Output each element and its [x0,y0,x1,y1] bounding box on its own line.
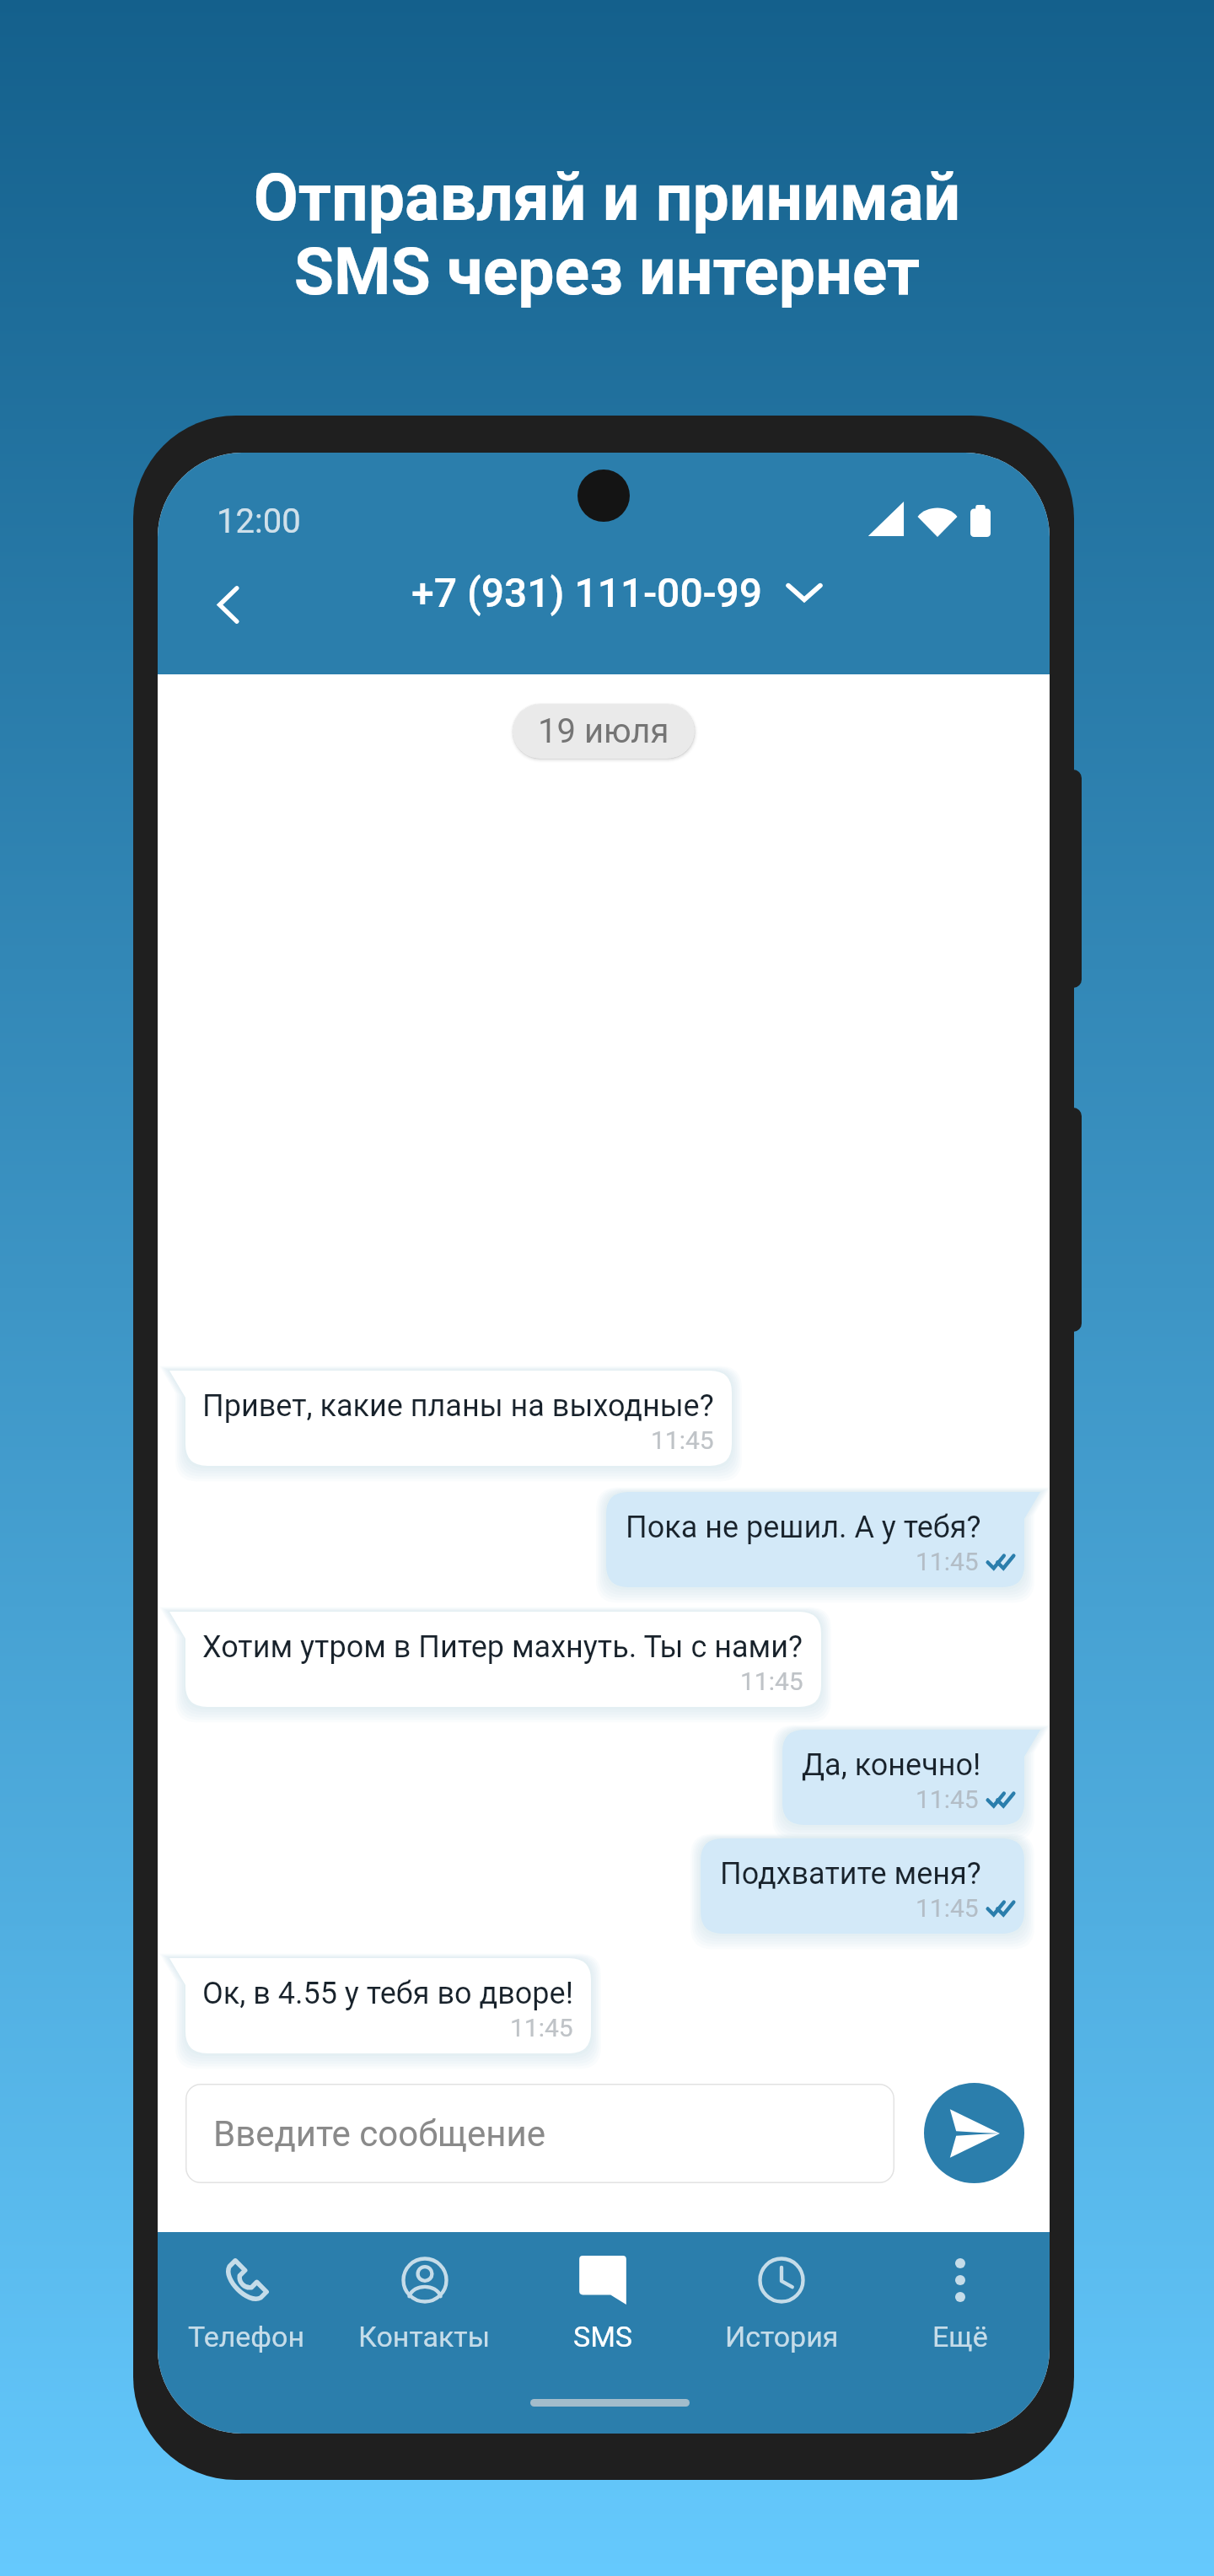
staticText: 11:45 [916,1547,979,1576]
staticText: 12:00 [217,502,301,541]
button[interactable]: Привет, какие планы на выходные? [185,1371,732,1466]
staticText: 11:45 [916,1784,979,1814]
staticText: 11:45 [740,1666,803,1696]
staticText: SMS [573,2320,633,2353]
button[interactable]: Send [924,2083,1024,2183]
button[interactable]: Show contact options [782,570,827,615]
button[interactable]: Контакты [336,2232,513,2377]
button[interactable]: Телефон [158,2232,336,2377]
button[interactable]: Пока не решил. А у тебя? [606,1492,1024,1587]
staticText: 11:45 [651,1425,714,1455]
staticText: Привет, какие планы на выходные? [202,1388,714,1424]
staticText: +7 (931) 111-00-99 [411,569,763,616]
button[interactable]: Хотим утром в Питер махнуть. Ты с нами? [185,1612,821,1707]
staticText: Контакты [358,2320,491,2353]
button[interactable]: SMS [513,2232,692,2377]
staticText: Введите сообщение [213,2113,546,2155]
staticText: История [725,2320,839,2353]
staticText: Да, конечно! [802,1747,981,1783]
staticText: Хотим утром в Питер махнуть. Ты с нами? [202,1629,803,1665]
staticText: Телефон [188,2320,305,2353]
button[interactable]: Ещё [871,2232,1050,2377]
button[interactable]: Back [177,552,278,657]
button[interactable]: Ок, в 4.55 у тебя во дворе! [185,1958,591,2053]
staticText: Отправляй и принимай SMS через интернет [0,160,1214,310]
staticText: Ок, в 4.55 у тебя во дворе! [202,1976,573,2011]
staticText: 11:45 [916,1893,979,1923]
staticText: Подхватите меня? [720,1856,981,1892]
button[interactable]: История [692,2232,871,2377]
staticText: Пока не решил. А у тебя? [626,1510,981,1545]
button[interactable]: Введите сообщение [185,2084,894,2183]
staticText: 11:45 [510,2013,573,2042]
button[interactable]: Да, конечно! [782,1730,1024,1825]
staticText: Ещё [932,2320,988,2353]
button[interactable]: Подхватите меня? [701,1838,1024,1934]
staticText: 19 июля [538,711,669,751]
